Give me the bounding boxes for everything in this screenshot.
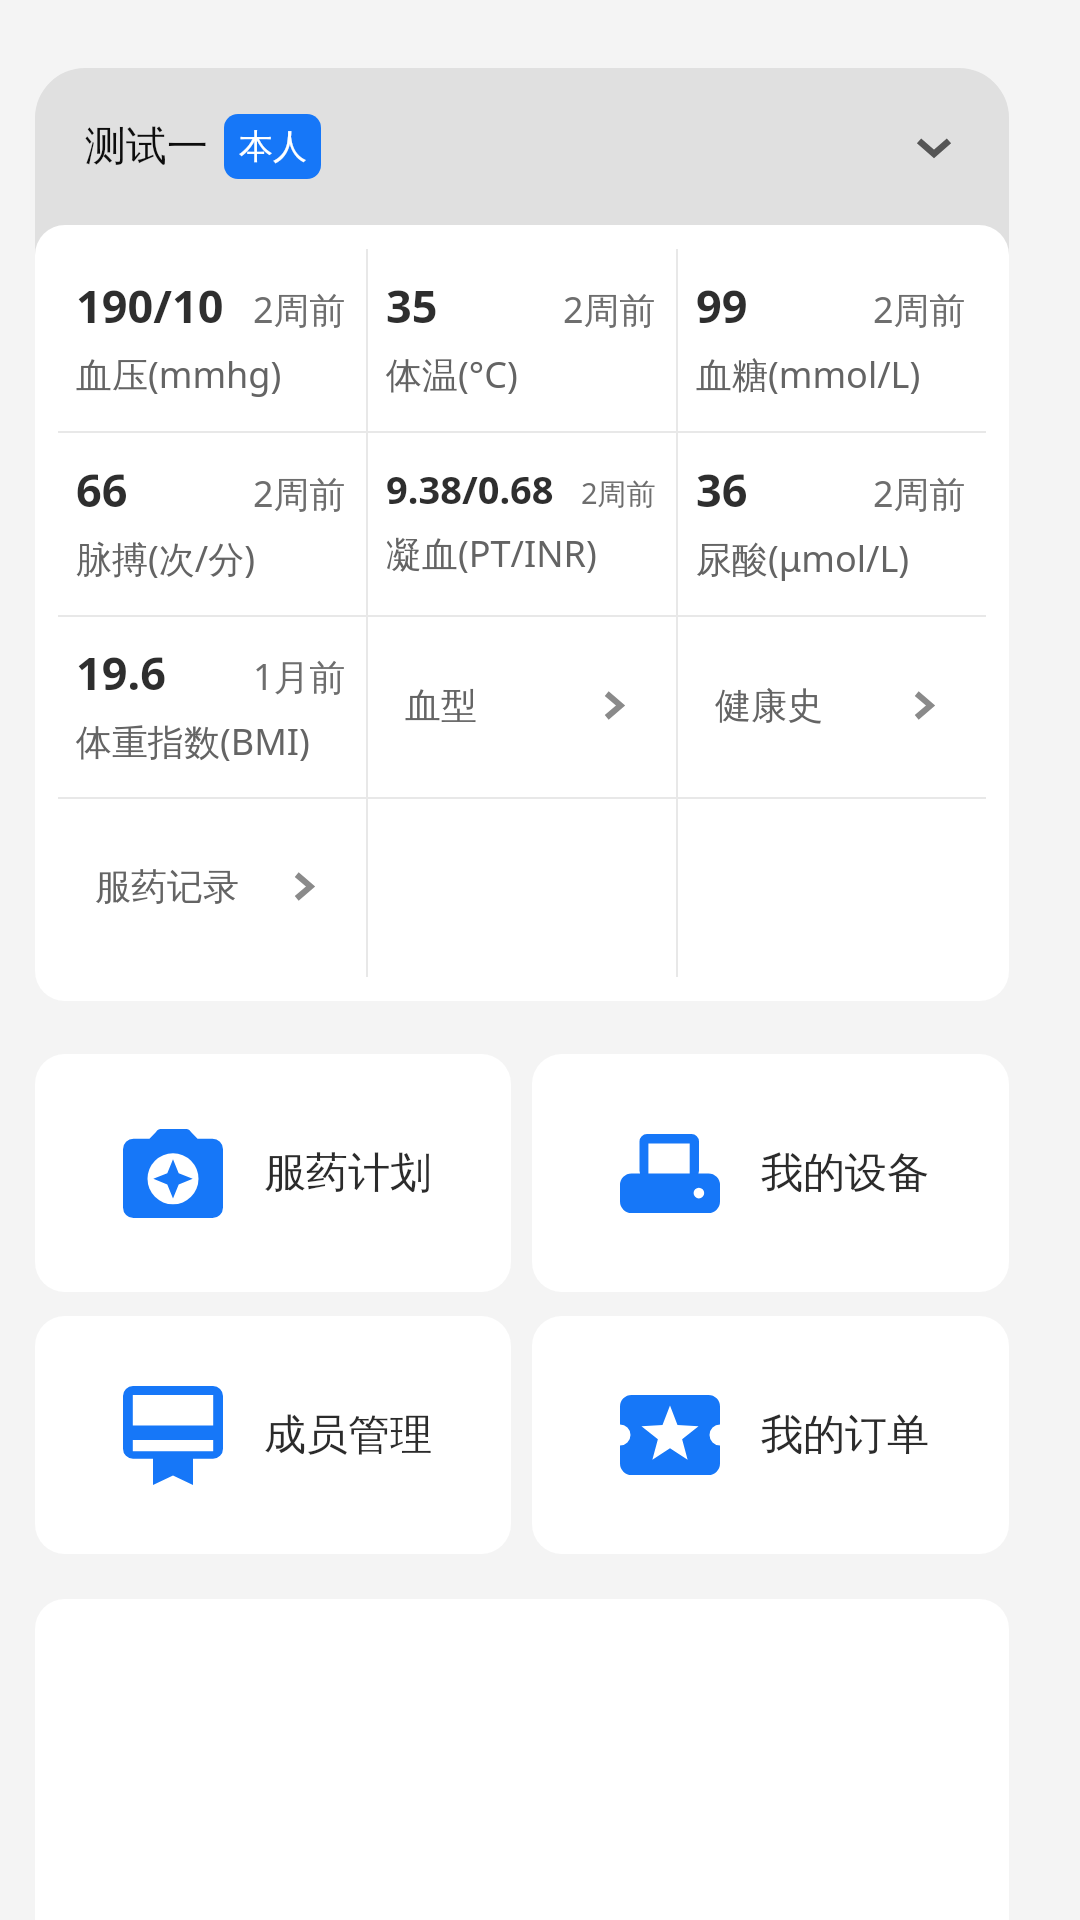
button[interactable]: 服药记录 [58, 799, 366, 977]
button[interactable]: 36 [678, 433, 986, 615]
button[interactable]: 血型 [368, 617, 676, 797]
staticText: 健康史 [715, 683, 823, 728]
button[interactable]: 服药计划 [35, 1054, 511, 1292]
staticText: 服药计划 [264, 1147, 432, 1200]
staticText: 凝血(PT/INR) [386, 529, 597, 578]
staticText: 36 [696, 459, 748, 520]
staticText: 我的订单 [761, 1409, 929, 1462]
button[interactable]: 99 [678, 249, 986, 431]
staticText: 我的设备 [761, 1147, 929, 1200]
button[interactable]: 测试一 [35, 68, 1009, 263]
staticText: 35 [386, 275, 438, 336]
other: 展开 [912, 125, 956, 169]
staticText: 2周前 [253, 469, 346, 518]
staticText: 2周前 [563, 285, 656, 334]
staticText: 2周前 [253, 285, 346, 334]
staticText: 19.6 [76, 642, 166, 703]
staticText: 测试一 [85, 121, 208, 173]
staticText: 99 [696, 275, 748, 336]
staticText: 2周前 [581, 473, 656, 513]
staticText: 尿酸(μmol/L) [696, 534, 910, 583]
staticText: 服药记录 [95, 864, 239, 909]
button[interactable]: 成员管理 [35, 1316, 511, 1554]
staticText: 成员管理 [264, 1409, 432, 1462]
staticText: 2周前 [873, 469, 966, 518]
button[interactable]: 66 [58, 433, 366, 615]
button[interactable]: 35 [368, 249, 676, 431]
button[interactable]: 我的订单 [532, 1316, 1009, 1554]
staticText: 血糖(mmol/L) [696, 350, 921, 399]
button[interactable]: 我的设备 [532, 1054, 1009, 1292]
staticText: 2周前 [873, 285, 966, 334]
staticText: 血压(mmhg) [76, 350, 282, 399]
staticText: 190/10 [76, 275, 224, 336]
staticText: 体温(°C) [386, 350, 518, 399]
staticText: 体重指数(BMI) [76, 717, 310, 766]
staticText: 本人 [239, 125, 307, 168]
button[interactable]: 9.38/0.68 [368, 433, 676, 615]
staticText: 66 [76, 459, 128, 520]
staticText: 脉搏(次/分) [76, 534, 255, 583]
staticText: 1月前 [253, 652, 346, 701]
button[interactable]: 健康史 [678, 617, 986, 797]
staticText: 血型 [405, 683, 477, 728]
button[interactable]: 190/10 [58, 249, 366, 431]
button[interactable]: 19.6 [58, 617, 366, 797]
staticText: 9.38/0.68 [386, 463, 554, 515]
